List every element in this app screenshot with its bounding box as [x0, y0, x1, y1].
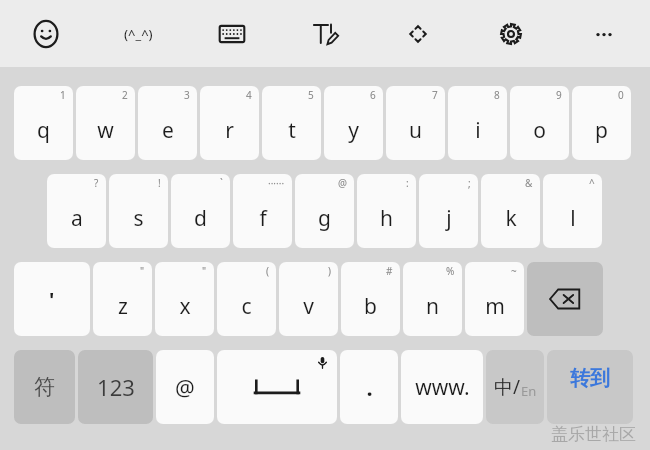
button[interactable]: ;	[419, 174, 478, 248]
staticText: (^_^)	[124, 25, 153, 43]
button[interactable]: ~	[465, 262, 524, 336]
staticText: @	[175, 372, 195, 402]
staticText: x	[179, 292, 191, 321]
button[interactable]: )	[279, 262, 338, 336]
staticText: En	[521, 382, 537, 400]
button[interactable]: ?	[47, 174, 106, 248]
button[interactable]: 中/	[486, 350, 544, 424]
button[interactable]: Space	[217, 350, 337, 424]
button[interactable]: &	[481, 174, 540, 248]
button[interactable]: Kaomoji	[92, 0, 185, 67]
button[interactable]: !	[109, 174, 168, 248]
button[interactable]: '	[14, 262, 90, 336]
staticText: ;	[468, 176, 471, 190]
button[interactable]: 4	[200, 86, 259, 160]
button[interactable]: ^	[543, 174, 602, 248]
button[interactable]: 转到	[547, 350, 633, 424]
button[interactable]: ······	[233, 174, 292, 248]
staticText: 转到	[570, 366, 610, 391]
staticText: s	[133, 204, 144, 233]
staticText: 5	[308, 88, 314, 102]
button[interactable]: Handwriting	[278, 0, 371, 67]
button[interactable]: 5	[262, 86, 321, 160]
staticText: 8	[494, 88, 500, 102]
staticText: `	[220, 176, 223, 190]
button[interactable]: .	[340, 350, 398, 424]
staticText: .	[366, 372, 373, 402]
staticText: 123	[97, 372, 135, 402]
staticText: !	[158, 176, 161, 190]
staticText: 7	[432, 88, 438, 102]
staticText: ^	[589, 176, 595, 190]
staticText: "	[202, 264, 207, 278]
button[interactable]: `	[171, 174, 230, 248]
button[interactable]: www.	[401, 350, 483, 424]
staticText: c	[241, 292, 252, 321]
staticText: v	[303, 292, 314, 321]
button[interactable]: 123	[78, 350, 153, 424]
button[interactable]: Settings	[464, 0, 557, 67]
staticText: )	[328, 264, 331, 278]
button[interactable]: :	[357, 174, 416, 248]
staticText: 1	[60, 88, 66, 102]
button[interactable]: @	[156, 350, 214, 424]
staticText: u	[409, 116, 422, 145]
staticText: 2	[122, 88, 128, 102]
staticText: n	[426, 292, 439, 321]
staticText: 符	[34, 374, 55, 400]
staticText: ······	[268, 176, 285, 190]
button[interactable]: 0	[572, 86, 631, 160]
staticText: "	[140, 264, 145, 278]
staticText: 6	[370, 88, 376, 102]
staticText: www.	[415, 373, 470, 402]
staticText: 9	[556, 88, 562, 102]
button[interactable]: 7	[386, 86, 445, 160]
button[interactable]: 8	[448, 86, 507, 160]
button[interactable]: @	[295, 174, 354, 248]
staticText: y	[348, 116, 359, 145]
staticText: p	[595, 116, 608, 145]
staticText: j	[446, 204, 452, 233]
staticText: '	[49, 286, 55, 313]
staticText: ?	[94, 176, 99, 190]
button[interactable]: 9	[510, 86, 569, 160]
button[interactable]: (	[217, 262, 276, 336]
staticText: #	[386, 264, 393, 278]
staticText: m	[485, 292, 505, 321]
staticText: z	[118, 292, 128, 321]
staticText: w	[97, 116, 114, 145]
staticText: 0	[618, 88, 624, 102]
staticText: 中/	[494, 374, 521, 400]
button[interactable]: %	[403, 262, 462, 336]
staticText: %	[446, 264, 455, 278]
button[interactable]: Backspace	[527, 262, 603, 336]
button[interactable]: Move keyboard	[371, 0, 464, 67]
staticText: r	[225, 116, 234, 145]
button[interactable]: 2	[76, 86, 135, 160]
button[interactable]: 符	[14, 350, 75, 424]
staticText: b	[364, 292, 377, 321]
staticText: i	[475, 116, 481, 145]
staticText: 4	[246, 88, 252, 102]
button[interactable]: 1	[14, 86, 73, 160]
staticText: f	[259, 204, 267, 233]
staticText: a	[71, 204, 83, 233]
staticText: 3	[184, 88, 190, 102]
staticText: ~	[511, 264, 517, 278]
staticText: :	[406, 176, 409, 190]
button[interactable]: #	[341, 262, 400, 336]
button[interactable]: Keyboard layout	[185, 0, 278, 67]
staticText: &	[525, 176, 533, 190]
button[interactable]: "	[155, 262, 214, 336]
button[interactable]: More	[557, 0, 650, 67]
staticText: e	[162, 116, 174, 145]
staticText: t	[288, 116, 296, 145]
button[interactable]: Emoji	[0, 0, 92, 67]
button[interactable]: 3	[138, 86, 197, 160]
button[interactable]: 6	[324, 86, 383, 160]
staticText: o	[533, 116, 546, 145]
staticText: 盖乐世社区	[551, 424, 636, 445]
staticText: g	[318, 204, 331, 233]
button[interactable]: "	[93, 262, 152, 336]
